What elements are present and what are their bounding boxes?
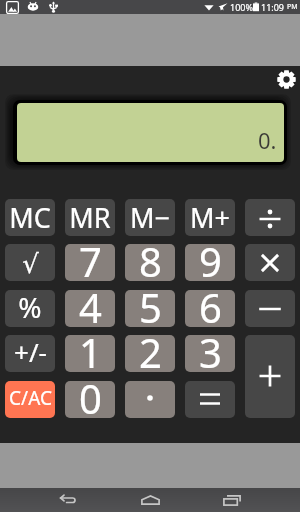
button[interactable]: M+ [185, 199, 235, 236]
button[interactable]: Multiply [245, 244, 295, 281]
staticText: 8 [139, 244, 162, 281]
staticText: 4 [79, 290, 102, 327]
button[interactable]: Equals [185, 381, 235, 418]
staticText: 1 [79, 335, 102, 372]
button[interactable]: Recents [204, 488, 260, 512]
button[interactable]: % [5, 290, 55, 327]
button[interactable]: M− [125, 199, 175, 236]
button[interactable]: 1 [65, 335, 115, 372]
staticText: 7 [79, 244, 102, 281]
staticText: 0 [79, 381, 102, 418]
staticText: √ [22, 249, 39, 279]
staticText: 6 [199, 290, 222, 327]
staticText: C/AC [9, 385, 52, 411]
button[interactable]: Subtract [245, 290, 295, 327]
button[interactable]: MR [65, 199, 115, 236]
button[interactable]: Decimal point [125, 381, 175, 418]
button[interactable]: Add [245, 335, 295, 418]
button[interactable]: 9 [185, 244, 235, 281]
staticText: 100% [230, 1, 253, 13]
staticText: M+ [190, 199, 230, 236]
button[interactable]: Settings [275, 68, 297, 90]
button[interactable]: MC [5, 199, 55, 236]
button[interactable]: +/- [5, 335, 55, 372]
button[interactable]: 5 [125, 290, 175, 327]
staticText: MR [69, 199, 111, 236]
button[interactable]: 4 [65, 290, 115, 327]
staticText: MC [9, 199, 51, 236]
button[interactable]: 8 [125, 244, 175, 281]
button[interactable]: Home [122, 488, 178, 512]
staticText: 0. [258, 125, 277, 155]
staticText: M− [130, 199, 170, 236]
staticText: 3 [199, 335, 222, 372]
button[interactable]: 2 [125, 335, 175, 372]
button[interactable]: Back [41, 488, 97, 512]
button[interactable]: Divide [245, 199, 295, 236]
button[interactable]: 7 [65, 244, 115, 281]
button[interactable]: 6 [185, 290, 235, 327]
button[interactable]: 3 [185, 335, 235, 372]
staticText: % [18, 290, 42, 326]
staticText: PM [287, 2, 298, 12]
button[interactable]: C/AC [5, 381, 55, 418]
staticText: 11:09 [261, 1, 285, 13]
staticText: 9 [199, 244, 222, 281]
staticText: 5 [139, 290, 162, 327]
button[interactable]: √ [5, 244, 55, 281]
staticText: +/- [14, 335, 47, 369]
staticText: 2 [139, 335, 162, 372]
button[interactable]: 0 [65, 381, 115, 418]
